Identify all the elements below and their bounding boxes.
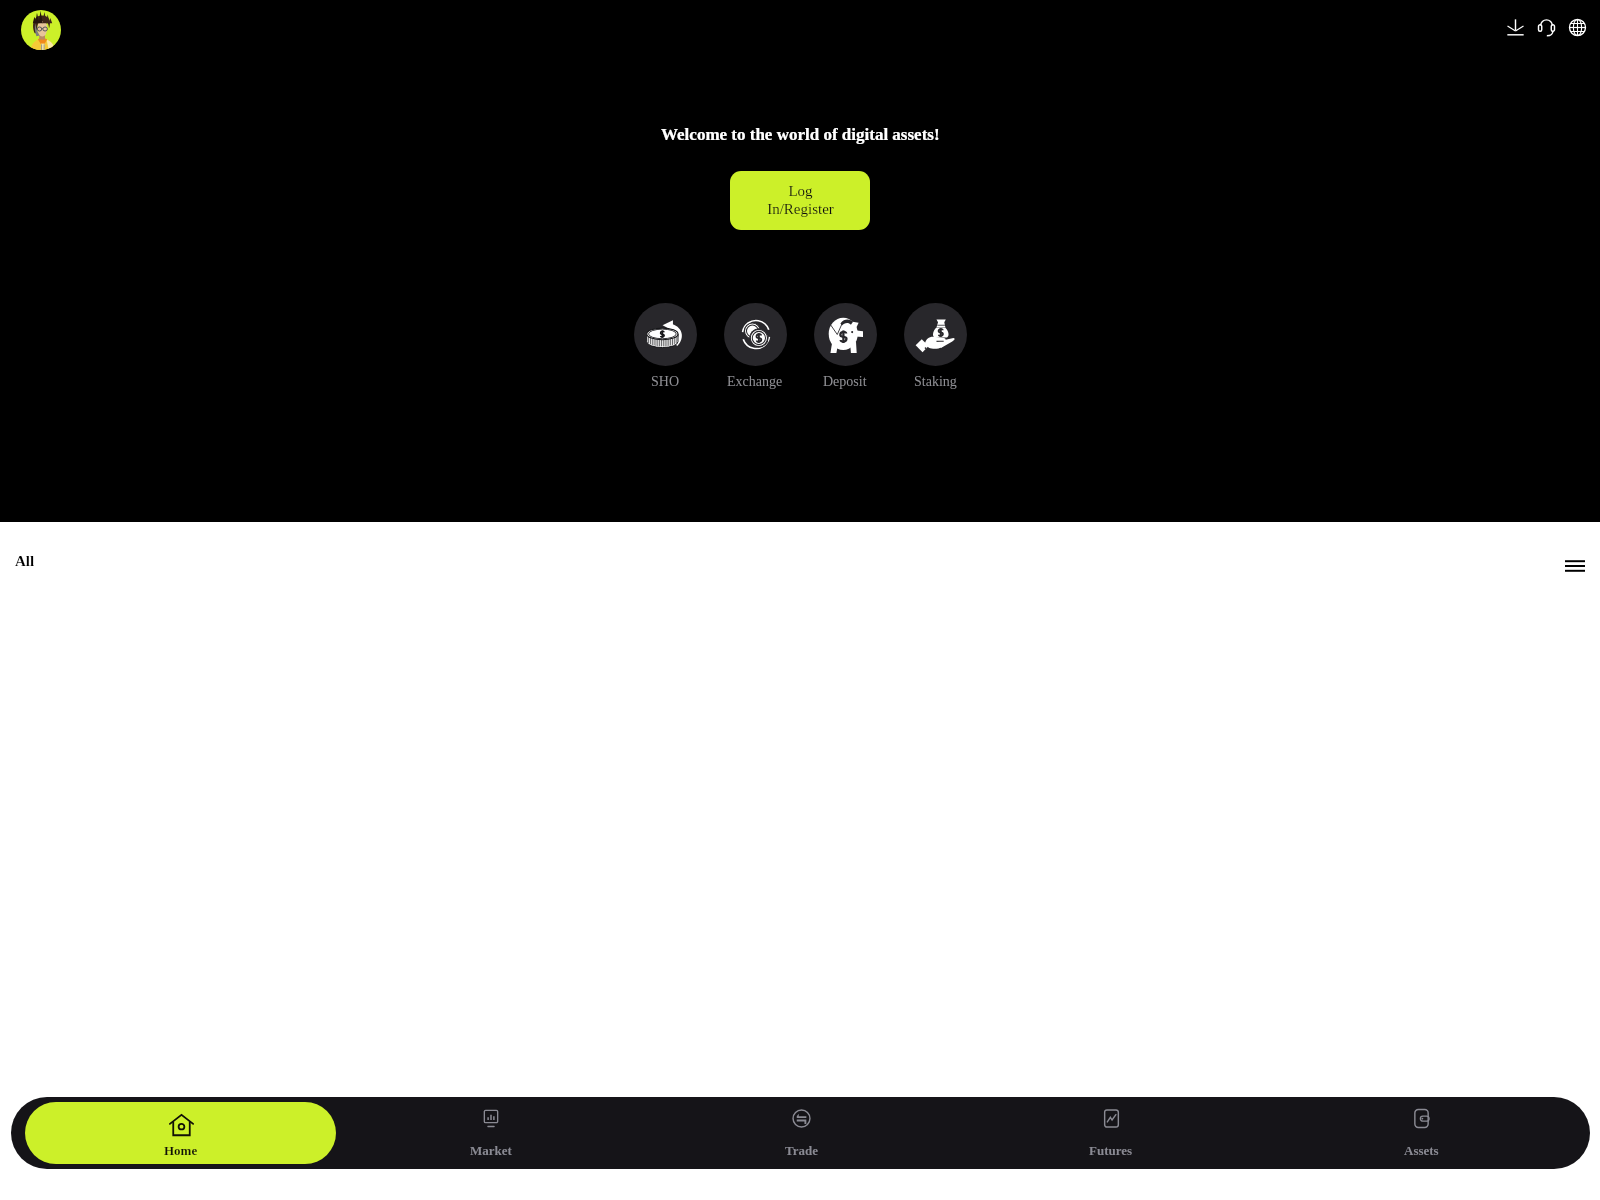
- staticText: Market: [470, 1143, 512, 1157]
- staticText: Log In/Register: [767, 183, 834, 218]
- button[interactable]: Deposit: [800, 303, 890, 390]
- staticText: Welcome to the world of digital assets!: [661, 125, 940, 144]
- button[interactable]: All: [15, 553, 35, 570]
- button[interactable]: Market: [336, 1102, 646, 1164]
- staticText: Assets: [1404, 1143, 1439, 1157]
- button[interactable]: Customer support: [1535, 16, 1558, 39]
- button[interactable]: Download app: [1504, 16, 1527, 39]
- staticText: All: [15, 553, 35, 570]
- button[interactable]: Language: [1566, 16, 1589, 39]
- button[interactable]: Home: [25, 1102, 336, 1164]
- staticText: Exchange: [727, 374, 783, 390]
- staticText: Deposit: [823, 374, 867, 390]
- button[interactable]: Log In/Register: [730, 171, 870, 230]
- button[interactable]: Staking: [890, 303, 980, 390]
- button[interactable]: Profile: [21, 10, 61, 50]
- staticText: Staking: [914, 374, 957, 390]
- staticText: Futures: [1089, 1143, 1133, 1157]
- button[interactable]: Menu: [1562, 553, 1588, 579]
- button[interactable]: Assets: [1266, 1102, 1576, 1164]
- staticText: Home: [164, 1143, 198, 1157]
- button[interactable]: Trade: [646, 1102, 956, 1164]
- button[interactable]: SHO: [620, 303, 710, 390]
- staticText: SHO: [651, 374, 680, 390]
- button[interactable]: Exchange: [710, 303, 800, 390]
- staticText: Trade: [785, 1143, 818, 1157]
- button[interactable]: Futures: [956, 1102, 1266, 1164]
